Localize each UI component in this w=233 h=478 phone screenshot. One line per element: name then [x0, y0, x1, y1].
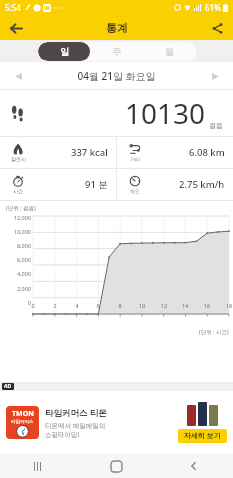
button[interactable]: 주	[90, 42, 143, 61]
button[interactable]: 자세히 보기	[178, 429, 227, 443]
staticText: 0	[2, 299, 31, 306]
staticText: 2,000	[2, 285, 31, 292]
staticText: 5:54	[5, 2, 21, 13]
button[interactable]: Back	[6, 18, 26, 38]
staticText: 6.08 km	[189, 146, 225, 159]
button[interactable]: Home	[77, 454, 155, 478]
staticText: 8	[116, 302, 124, 309]
button[interactable]: Recents	[0, 454, 77, 478]
staticText: 6,000	[2, 256, 31, 263]
staticText: 거리	[130, 156, 140, 162]
staticText: 일	[60, 46, 69, 57]
staticText: 타임커머스	[11, 419, 34, 425]
staticText: 337 kcal	[71, 146, 108, 159]
staticText: 8,000	[2, 242, 31, 249]
button[interactable]: 속도	[117, 169, 233, 200]
staticText: 주	[112, 46, 121, 57]
staticText: (단위 : 시간)	[199, 328, 229, 336]
button[interactable]: TMON	[0, 391, 233, 454]
staticText: 10	[138, 302, 146, 309]
staticText: 쇼핑타이밍!	[45, 430, 80, 439]
staticText: W	[44, 4, 50, 12]
staticText: 04월 21일 화요일	[26, 69, 207, 83]
button[interactable]: 일	[38, 42, 90, 61]
staticText: 칼로리	[11, 156, 26, 162]
staticText: 14	[181, 302, 189, 309]
button[interactable]: Next day	[207, 68, 223, 84]
staticText: 티몬에서 매일매일의	[45, 421, 106, 430]
staticText: 4,000	[2, 270, 31, 277]
button[interactable]: Previous day	[10, 68, 26, 84]
staticText: 타임커머스 티몬	[45, 407, 107, 419]
staticText: 10,000	[2, 228, 31, 235]
staticText: 61%	[205, 2, 221, 13]
staticText: 4	[73, 302, 81, 309]
staticText: 통계	[106, 21, 128, 35]
staticText: AD	[4, 383, 12, 390]
staticText: 6	[94, 302, 102, 309]
button[interactable]: 거리	[117, 137, 233, 168]
button[interactable]: 시간	[0, 169, 116, 200]
button[interactable]: 월	[143, 42, 196, 61]
staticText: 12,000	[2, 214, 31, 221]
staticText: TMON	[12, 409, 34, 419]
button[interactable]: 칼로리	[0, 137, 116, 168]
button[interactable]: Back	[155, 454, 233, 478]
staticText: 자세히 보기	[184, 431, 221, 441]
staticText: 월	[165, 46, 174, 57]
staticText: 12	[160, 302, 168, 309]
staticText: 속도	[130, 188, 140, 194]
staticText: 10130	[125, 94, 206, 132]
button[interactable]: Share	[207, 18, 227, 38]
staticText: 0	[29, 302, 37, 309]
staticText: 2	[51, 302, 59, 309]
staticText: 걸음	[209, 121, 223, 130]
staticText: (단위 : 걸음)	[6, 204, 36, 212]
staticText: 18	[225, 302, 233, 309]
staticText: 시간	[13, 188, 23, 194]
staticText: 91 분	[85, 178, 108, 191]
staticText: 2.75 km/h	[179, 178, 225, 191]
staticText: 16	[203, 302, 211, 309]
